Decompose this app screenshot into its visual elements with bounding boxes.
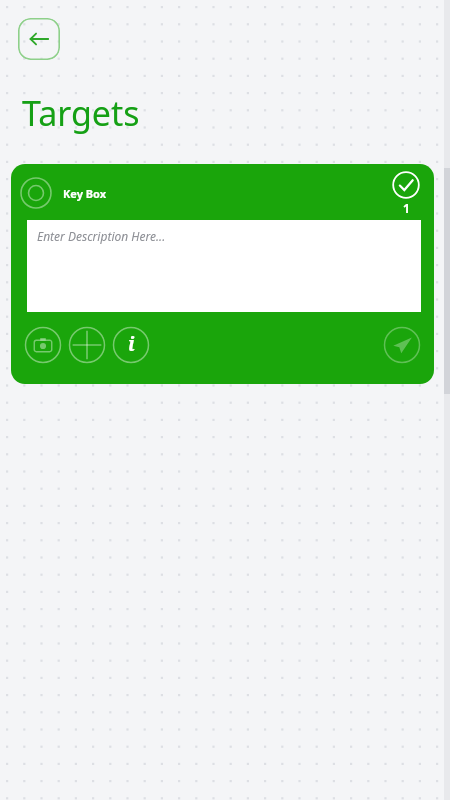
- staticText: i: [128, 331, 135, 357]
- button[interactable]: Information: [112, 326, 150, 364]
- button[interactable]: Send: [383, 326, 421, 364]
- button[interactable]: Target: [19, 176, 53, 210]
- button[interactable]: Confirmed: [392, 171, 420, 216]
- button[interactable]: Back: [18, 18, 60, 60]
- staticText: Enter Description Here...: [37, 228, 166, 244]
- button[interactable]: Add: [68, 326, 106, 364]
- staticText: Targets: [22, 90, 140, 136]
- button[interactable]: Enter Description Here...: [27, 220, 421, 312]
- staticText: 1: [403, 200, 410, 216]
- staticText: Key Box: [63, 186, 107, 201]
- button[interactable]: Camera: [24, 326, 62, 364]
